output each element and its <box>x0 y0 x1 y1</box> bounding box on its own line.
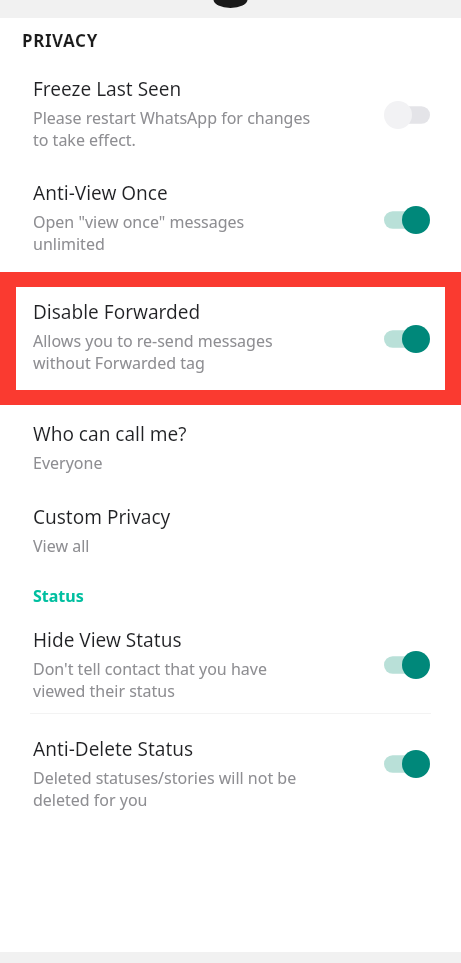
staticText: Don't tell contact that you have viewed … <box>33 658 267 702</box>
staticText: Deleted statuses/stories will not be del… <box>33 767 297 811</box>
staticText: Disable Forwarded <box>33 299 201 325</box>
button[interactable]: Toggle on <box>382 203 432 237</box>
staticText: Please restart WhatsApp for changes to t… <box>33 107 311 151</box>
staticText: Hide View Status <box>33 627 182 653</box>
button[interactable]: Custom Privacy <box>0 504 461 574</box>
staticText: PRIVACY <box>22 29 98 52</box>
staticText: Who can call me? <box>33 421 187 447</box>
staticText: Anti-Delete Status <box>33 736 194 762</box>
button[interactable]: Freeze Last Seen <box>0 62 461 168</box>
button[interactable]: Who can call me? <box>0 405 461 504</box>
button[interactable]: Toggle off <box>382 98 432 132</box>
staticText: Freeze Last Seen <box>33 76 182 102</box>
button[interactable]: Toggle on <box>382 322 432 356</box>
staticText: Open "view once" messages unlimited <box>33 211 245 255</box>
button[interactable]: Toggle on <box>382 648 432 682</box>
staticText: Status <box>33 585 84 607</box>
staticText: Allows you to re-send messages without F… <box>33 330 273 374</box>
button[interactable]: Anti-Delete Status <box>0 714 461 814</box>
staticText: Anti-View Once <box>33 180 168 206</box>
button[interactable]: Hide View Status <box>0 617 461 713</box>
staticText: Custom Privacy <box>33 504 171 530</box>
button[interactable]: Anti-View Once <box>0 168 461 272</box>
staticText: View all <box>33 535 90 557</box>
button[interactable]: Toggle on <box>382 747 432 781</box>
staticText: Everyone <box>33 452 103 474</box>
